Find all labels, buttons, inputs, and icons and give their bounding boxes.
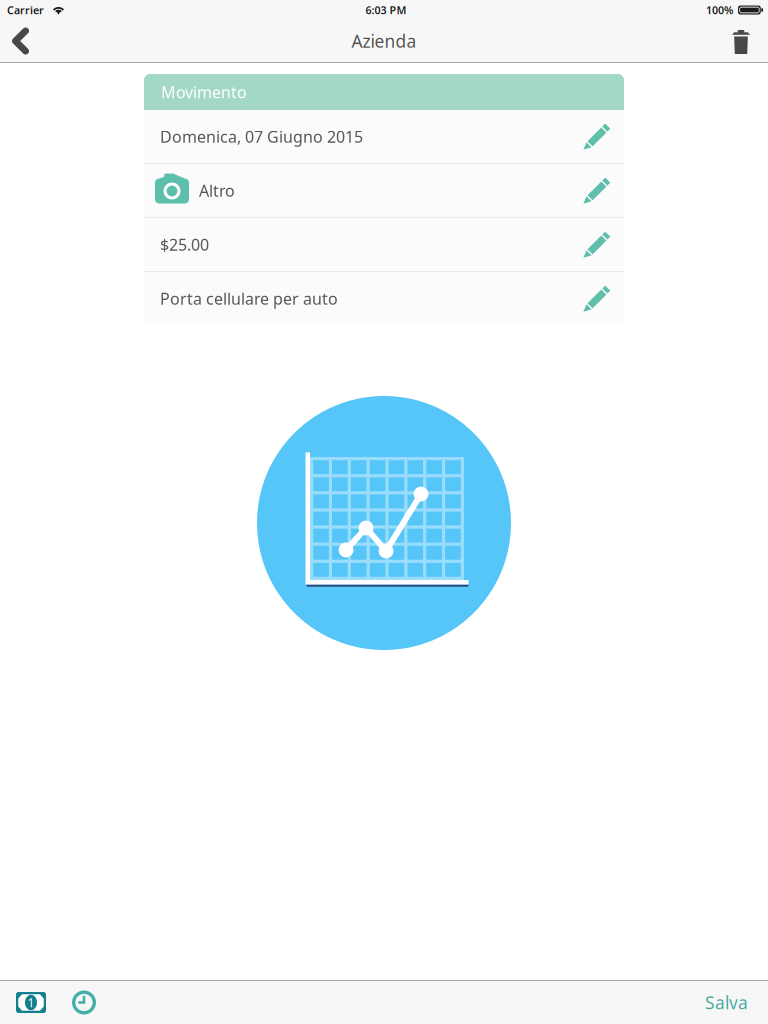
button[interactable]: Amount	[8, 981, 54, 1024]
button[interactable]: Salva	[693, 982, 760, 1023]
staticText: Movimento	[161, 81, 247, 103]
staticText: 6:03 PM	[365, 3, 406, 17]
button[interactable]: Delete	[718, 19, 768, 63]
button[interactable]: History	[54, 981, 105, 1024]
staticText: $25.00	[160, 234, 209, 255]
staticText: Salva	[705, 991, 748, 1014]
staticText: 1	[27, 994, 34, 1010]
button[interactable]: Domenica, 07 Giugno 2015	[144, 110, 624, 163]
button[interactable]: Altro	[144, 164, 624, 217]
staticText: Domenica, 07 Giugno 2015	[160, 126, 363, 147]
staticText: Porta cellulare per auto	[160, 288, 338, 309]
button[interactable]: $25.00	[144, 218, 624, 271]
button[interactable]: Porta cellulare per auto	[144, 272, 624, 325]
staticText: Azienda	[351, 29, 416, 52]
staticText: Altro	[199, 180, 235, 201]
staticText: 100%	[706, 3, 733, 17]
button[interactable]: Back	[0, 20, 43, 62]
staticText: Carrier	[7, 3, 44, 17]
